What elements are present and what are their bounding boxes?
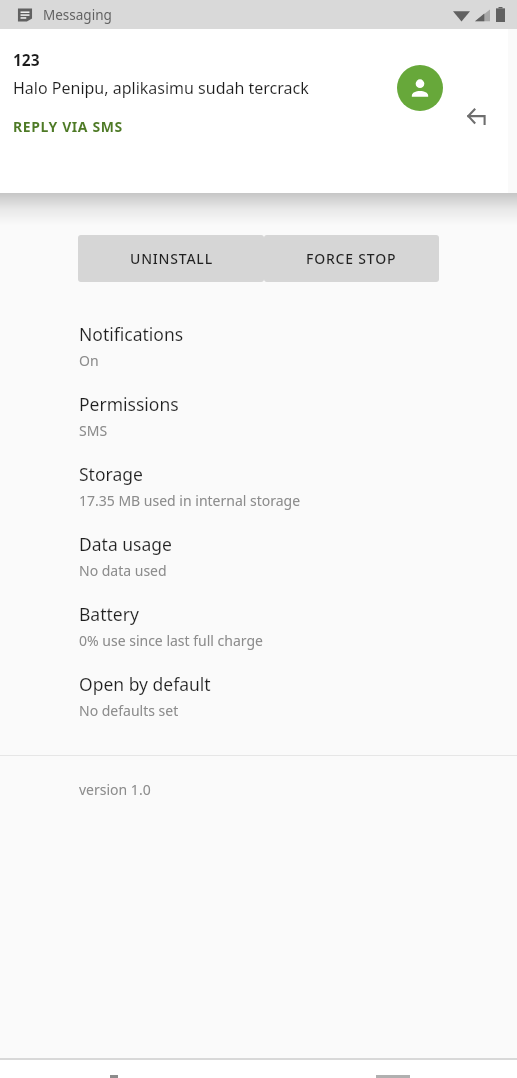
staticText: UNINSTALL — [130, 249, 213, 268]
staticText: Storage — [79, 462, 143, 486]
staticText: Open by default — [79, 672, 211, 696]
staticText: FORCE STOP — [306, 249, 397, 268]
staticText: SMS — [79, 421, 108, 440]
staticText: Messaging — [43, 6, 112, 24]
staticText: No defaults set — [79, 701, 179, 720]
button[interactable]: Back — [94, 1060, 134, 1078]
button[interactable]: Permissions — [0, 381, 517, 451]
button[interactable]: Battery — [0, 591, 517, 661]
button[interactable]: Storage — [0, 451, 517, 521]
staticText: 17.35 MB used in internal storage — [79, 491, 301, 510]
staticText: Battery — [79, 602, 139, 626]
button[interactable]: Reply — [462, 101, 494, 133]
staticText: 123 — [13, 49, 40, 70]
button[interactable]: REPLY VIA SMS — [13, 117, 123, 136]
staticText: No data used — [79, 561, 167, 580]
button[interactable]: FORCE STOP — [264, 235, 439, 282]
staticText: Notifications — [79, 322, 184, 346]
button[interactable]: 123 — [0, 29, 508, 193]
button[interactable]: UNINSTALL — [78, 235, 264, 282]
staticText: REPLY VIA SMS — [13, 117, 123, 136]
button[interactable]: Recents — [363, 1060, 423, 1078]
staticText: 0% use since last full charge — [79, 631, 263, 650]
staticText: Permissions — [79, 392, 179, 416]
staticText: Data usage — [79, 532, 172, 556]
staticText: version 1.0 — [79, 780, 151, 799]
button[interactable]: Contact avatar — [397, 65, 443, 111]
button[interactable]: Data usage — [0, 521, 517, 591]
button[interactable]: Notifications — [0, 311, 517, 381]
staticText: On — [79, 351, 99, 370]
staticText: Halo Penipu, aplikasimu sudah tercrack — [13, 77, 309, 99]
button[interactable]: Open by default — [0, 661, 517, 731]
